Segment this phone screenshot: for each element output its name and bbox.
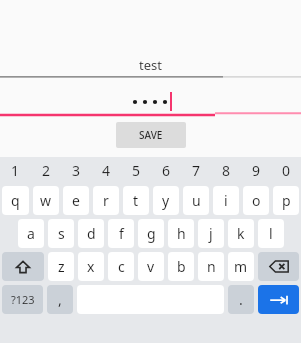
staticText: 4 (102, 161, 111, 180)
staticText: u (192, 191, 201, 210)
staticText: e (72, 191, 80, 210)
staticText: i (224, 191, 228, 210)
staticText: r (103, 191, 109, 210)
button[interactable]: u (183, 186, 209, 215)
staticText: , (58, 290, 62, 309)
button[interactable]: f (108, 219, 134, 248)
staticText: z (58, 257, 65, 276)
button[interactable]: z (48, 252, 74, 281)
button[interactable]: y (153, 186, 179, 215)
button[interactable]: n (198, 252, 224, 281)
button[interactable]: 4 (91, 157, 121, 184)
staticText: q (11, 191, 20, 210)
staticText: ?123 (11, 292, 35, 307)
staticText: SAVE (139, 128, 163, 142)
button[interactable]: , (47, 285, 73, 314)
button[interactable]: s (48, 219, 74, 248)
button[interactable]: 8 (211, 157, 241, 184)
staticText: g (147, 224, 156, 243)
button[interactable]: i (213, 186, 239, 215)
staticText: o (252, 191, 261, 210)
staticText: 0 (282, 161, 291, 180)
staticText: l (269, 224, 273, 243)
button[interactable]: test (0, 55, 301, 75)
button[interactable]: 6 (151, 157, 181, 184)
staticText: 6 (162, 161, 171, 180)
staticText: j (209, 224, 213, 243)
button[interactable]: a (18, 219, 44, 248)
button[interactable]: g (138, 219, 164, 248)
button[interactable]: p (273, 186, 299, 215)
button[interactable]: m (228, 252, 254, 281)
staticText: t (133, 191, 139, 210)
button[interactable]: o (243, 186, 269, 215)
button[interactable]: Enter (258, 285, 299, 314)
staticText: y (162, 191, 170, 210)
button[interactable]: ?123 (2, 285, 43, 314)
staticText: 7 (192, 161, 201, 180)
staticText: b (177, 257, 186, 276)
button[interactable]: Shift (2, 252, 44, 281)
staticText: d (87, 224, 96, 243)
button[interactable]: e (63, 186, 89, 215)
staticText: x (87, 257, 95, 276)
staticText: test (139, 56, 162, 74)
button[interactable]: 0 (271, 157, 301, 184)
button[interactable]: d (78, 219, 104, 248)
staticText: 8 (222, 161, 231, 180)
staticText: w (40, 191, 52, 210)
staticText: 1 (11, 161, 20, 180)
staticText: f (119, 224, 124, 243)
button[interactable]: 5 (121, 157, 151, 184)
button[interactable]: 2 (31, 157, 61, 184)
staticText: 2 (42, 161, 51, 180)
button[interactable]: SAVE (116, 122, 186, 148)
button[interactable]: c (108, 252, 134, 281)
staticText: v (147, 257, 155, 276)
button[interactable]: v (138, 252, 164, 281)
button[interactable]: Delete (258, 252, 299, 281)
button[interactable] (0, 90, 301, 112)
staticText: . (239, 290, 243, 309)
button[interactable]: r (93, 186, 119, 215)
button[interactable]: b (168, 252, 194, 281)
button[interactable]: w (33, 186, 59, 215)
button[interactable]: . (228, 285, 254, 314)
button[interactable]: x (78, 252, 104, 281)
staticText: s (58, 224, 65, 243)
staticText: m (234, 257, 248, 276)
button[interactable]: l (258, 219, 284, 248)
button[interactable]: 3 (61, 157, 91, 184)
button[interactable]: h (168, 219, 194, 248)
staticText: k (237, 224, 245, 243)
button[interactable]: 1 (0, 157, 31, 184)
button[interactable]: k (228, 219, 254, 248)
button[interactable]: t (123, 186, 149, 215)
button[interactable]: q (2, 186, 29, 215)
staticText: c (118, 257, 125, 276)
staticText: a (27, 224, 35, 243)
staticText: 3 (72, 161, 81, 180)
staticText: p (282, 191, 291, 210)
button[interactable]: 7 (181, 157, 211, 184)
staticText: 5 (132, 161, 141, 180)
staticText: 9 (252, 161, 261, 180)
staticText: h (177, 224, 186, 243)
button[interactable]: 9 (241, 157, 271, 184)
staticText: n (207, 257, 216, 276)
button[interactable]: j (198, 219, 224, 248)
